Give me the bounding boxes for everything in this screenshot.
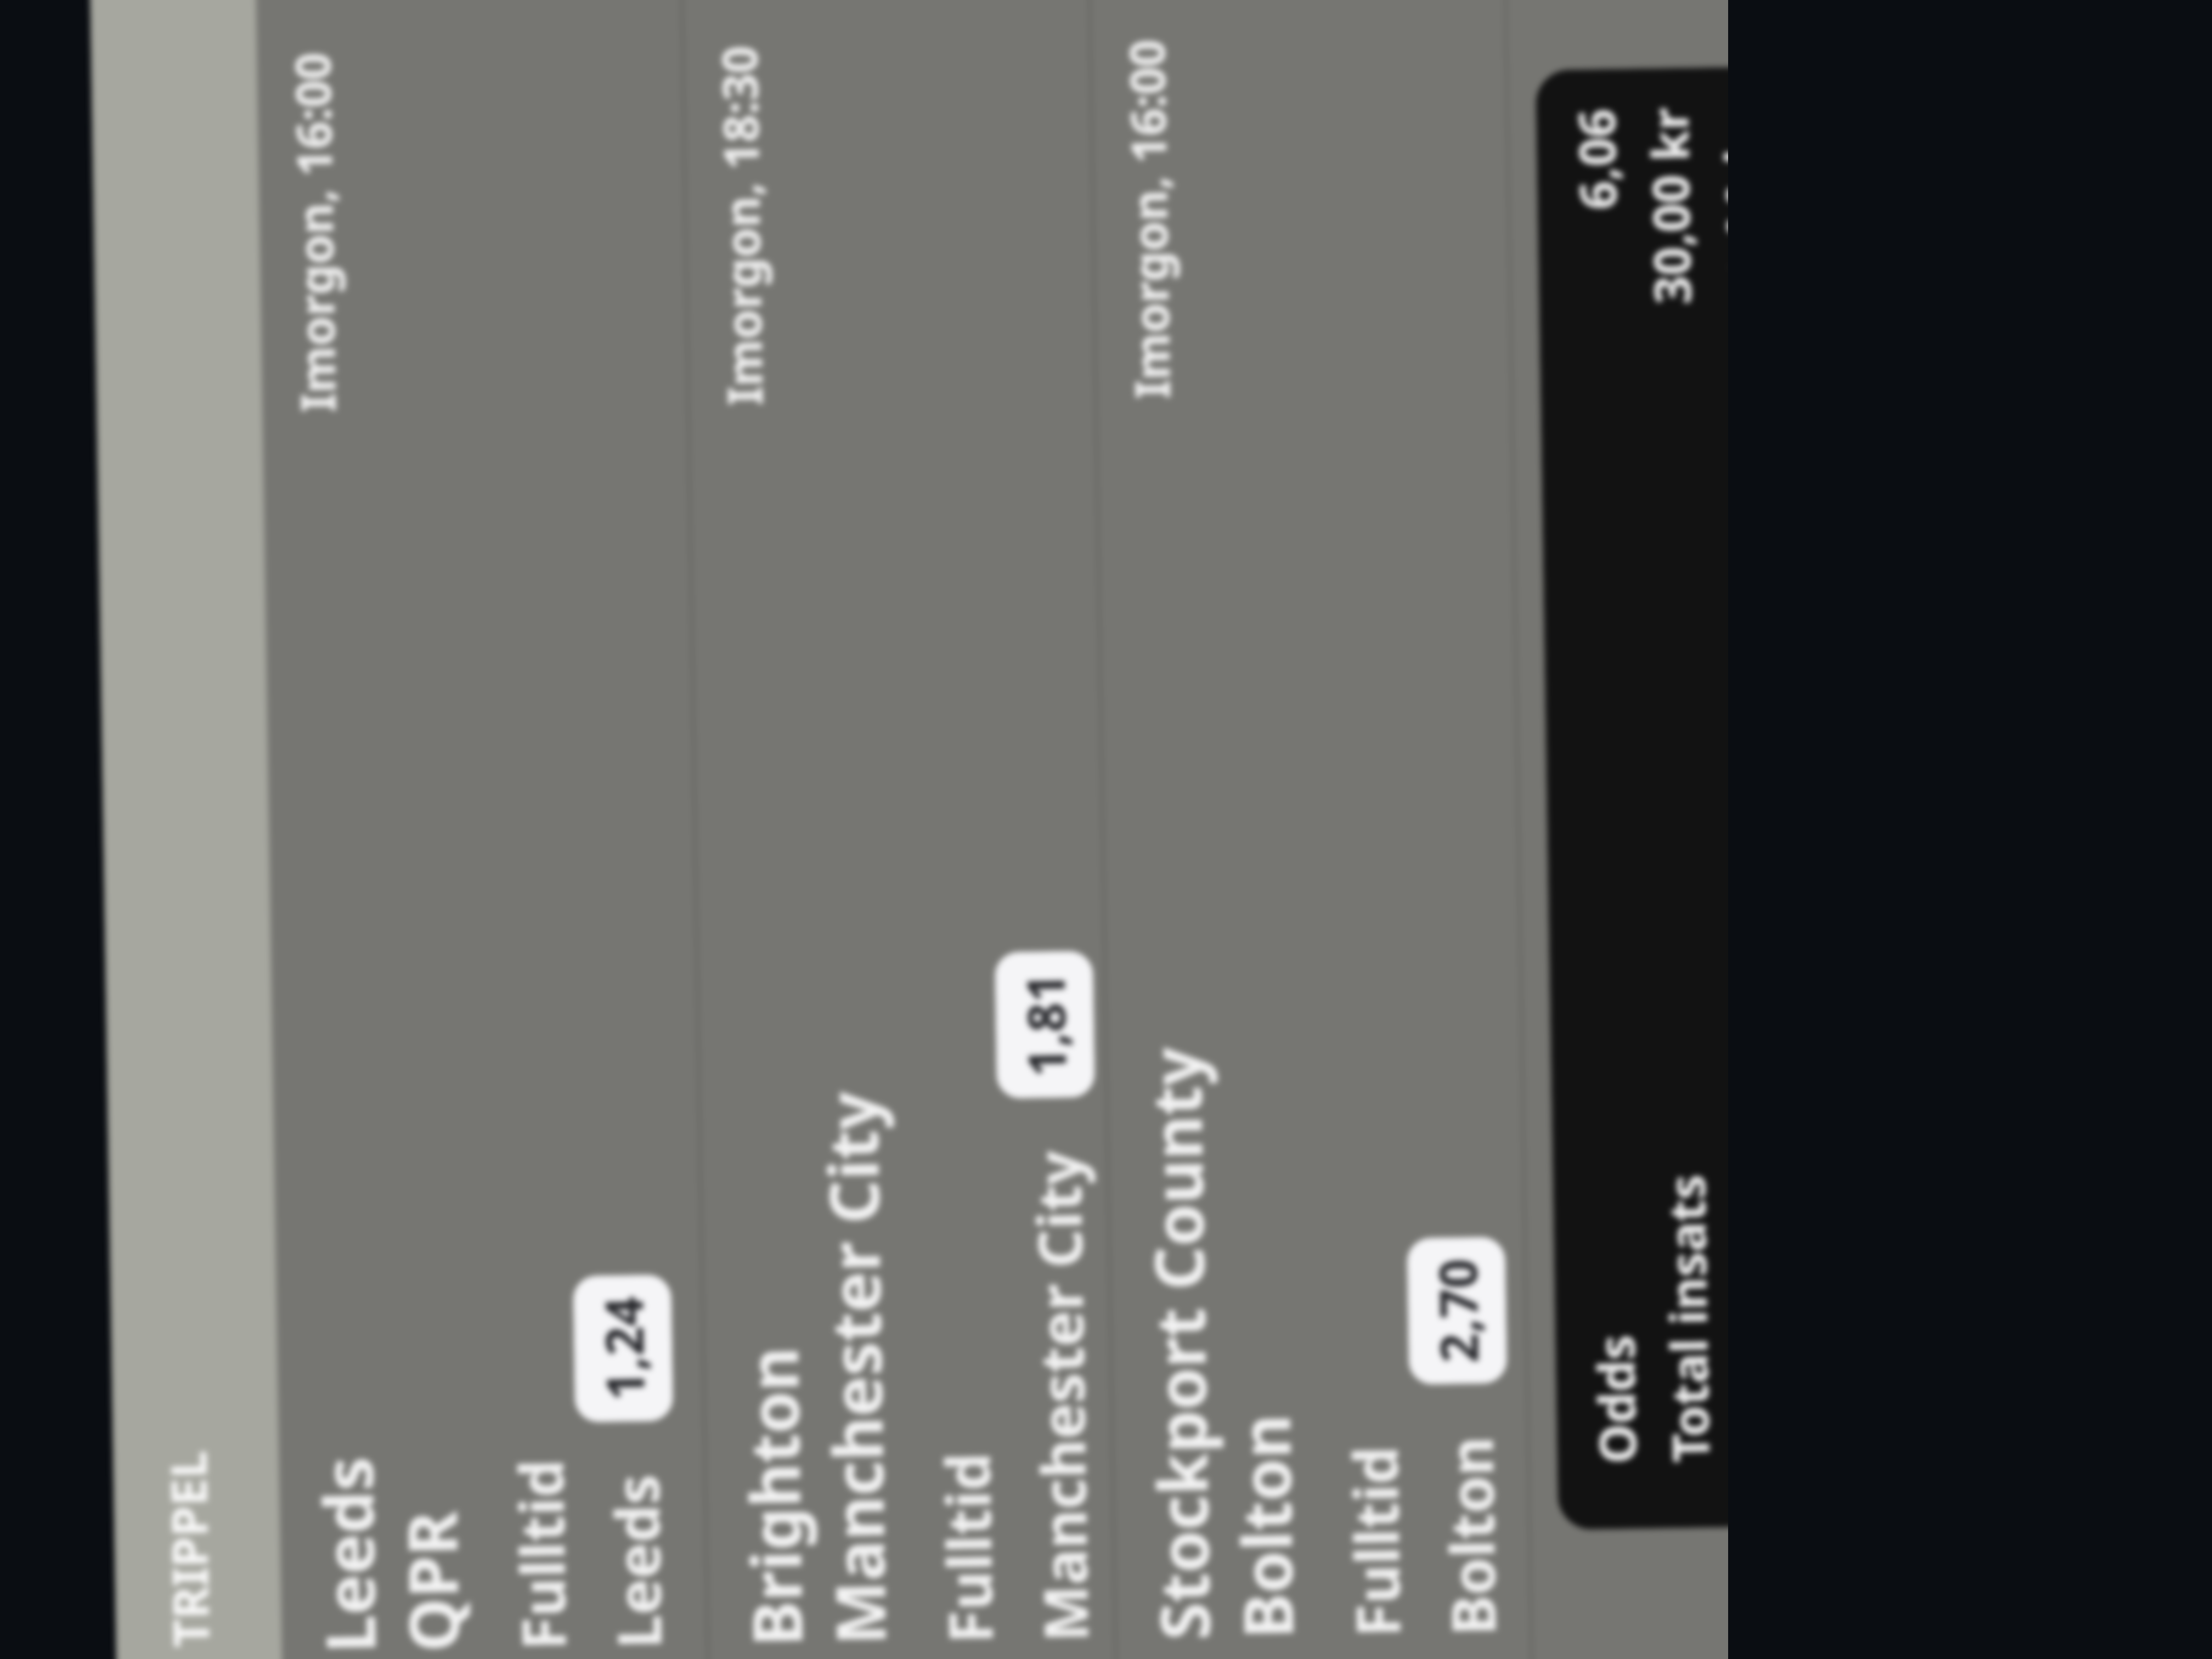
staticText: 30,00 kr xyxy=(1634,107,1706,305)
staticText: 2,70 xyxy=(1421,1258,1493,1364)
staticText: Manchester City xyxy=(1016,1150,1106,1643)
staticText: Fulltid xyxy=(925,1452,1010,1644)
button[interactable]: 2,70 xyxy=(1421,1258,1493,1364)
staticText: Brighton Manchester City xyxy=(721,1090,906,1647)
staticText: Fulltid xyxy=(1333,1445,1418,1638)
staticText: 181,80 kr xyxy=(1706,106,1728,353)
staticText: Imorgon, 18:30 xyxy=(705,45,777,406)
staticText: Odds xyxy=(1581,1334,1651,1464)
staticText: 1,24 xyxy=(587,1295,659,1401)
button[interactable]: Brighton Manchester City xyxy=(682,0,1116,1659)
staticText: Leeds xyxy=(594,1474,679,1649)
button[interactable]: 1,24 xyxy=(587,1295,659,1401)
staticText: 1,81 xyxy=(1009,972,1081,1078)
staticText: TRIPPEL xyxy=(154,1450,224,1648)
staticText: Total insats xyxy=(1651,1173,1724,1463)
staticText: 6,06 xyxy=(1561,108,1631,211)
staticText: Imorgon, 16:00 xyxy=(279,52,350,413)
button[interactable]: Stockport County Bolton xyxy=(1090,0,1531,1659)
button[interactable]: 1,81 xyxy=(1009,972,1081,1078)
staticText: Stockport County Bolton xyxy=(1128,1045,1313,1641)
button[interactable]: Leeds QPR xyxy=(256,0,708,1659)
staticText: Imorgon, 16:00 xyxy=(1113,39,1185,399)
staticText: Fulltid xyxy=(498,1459,584,1651)
staticText: Bolton xyxy=(1428,1436,1513,1636)
staticText: Leeds QPR xyxy=(300,1455,479,1654)
